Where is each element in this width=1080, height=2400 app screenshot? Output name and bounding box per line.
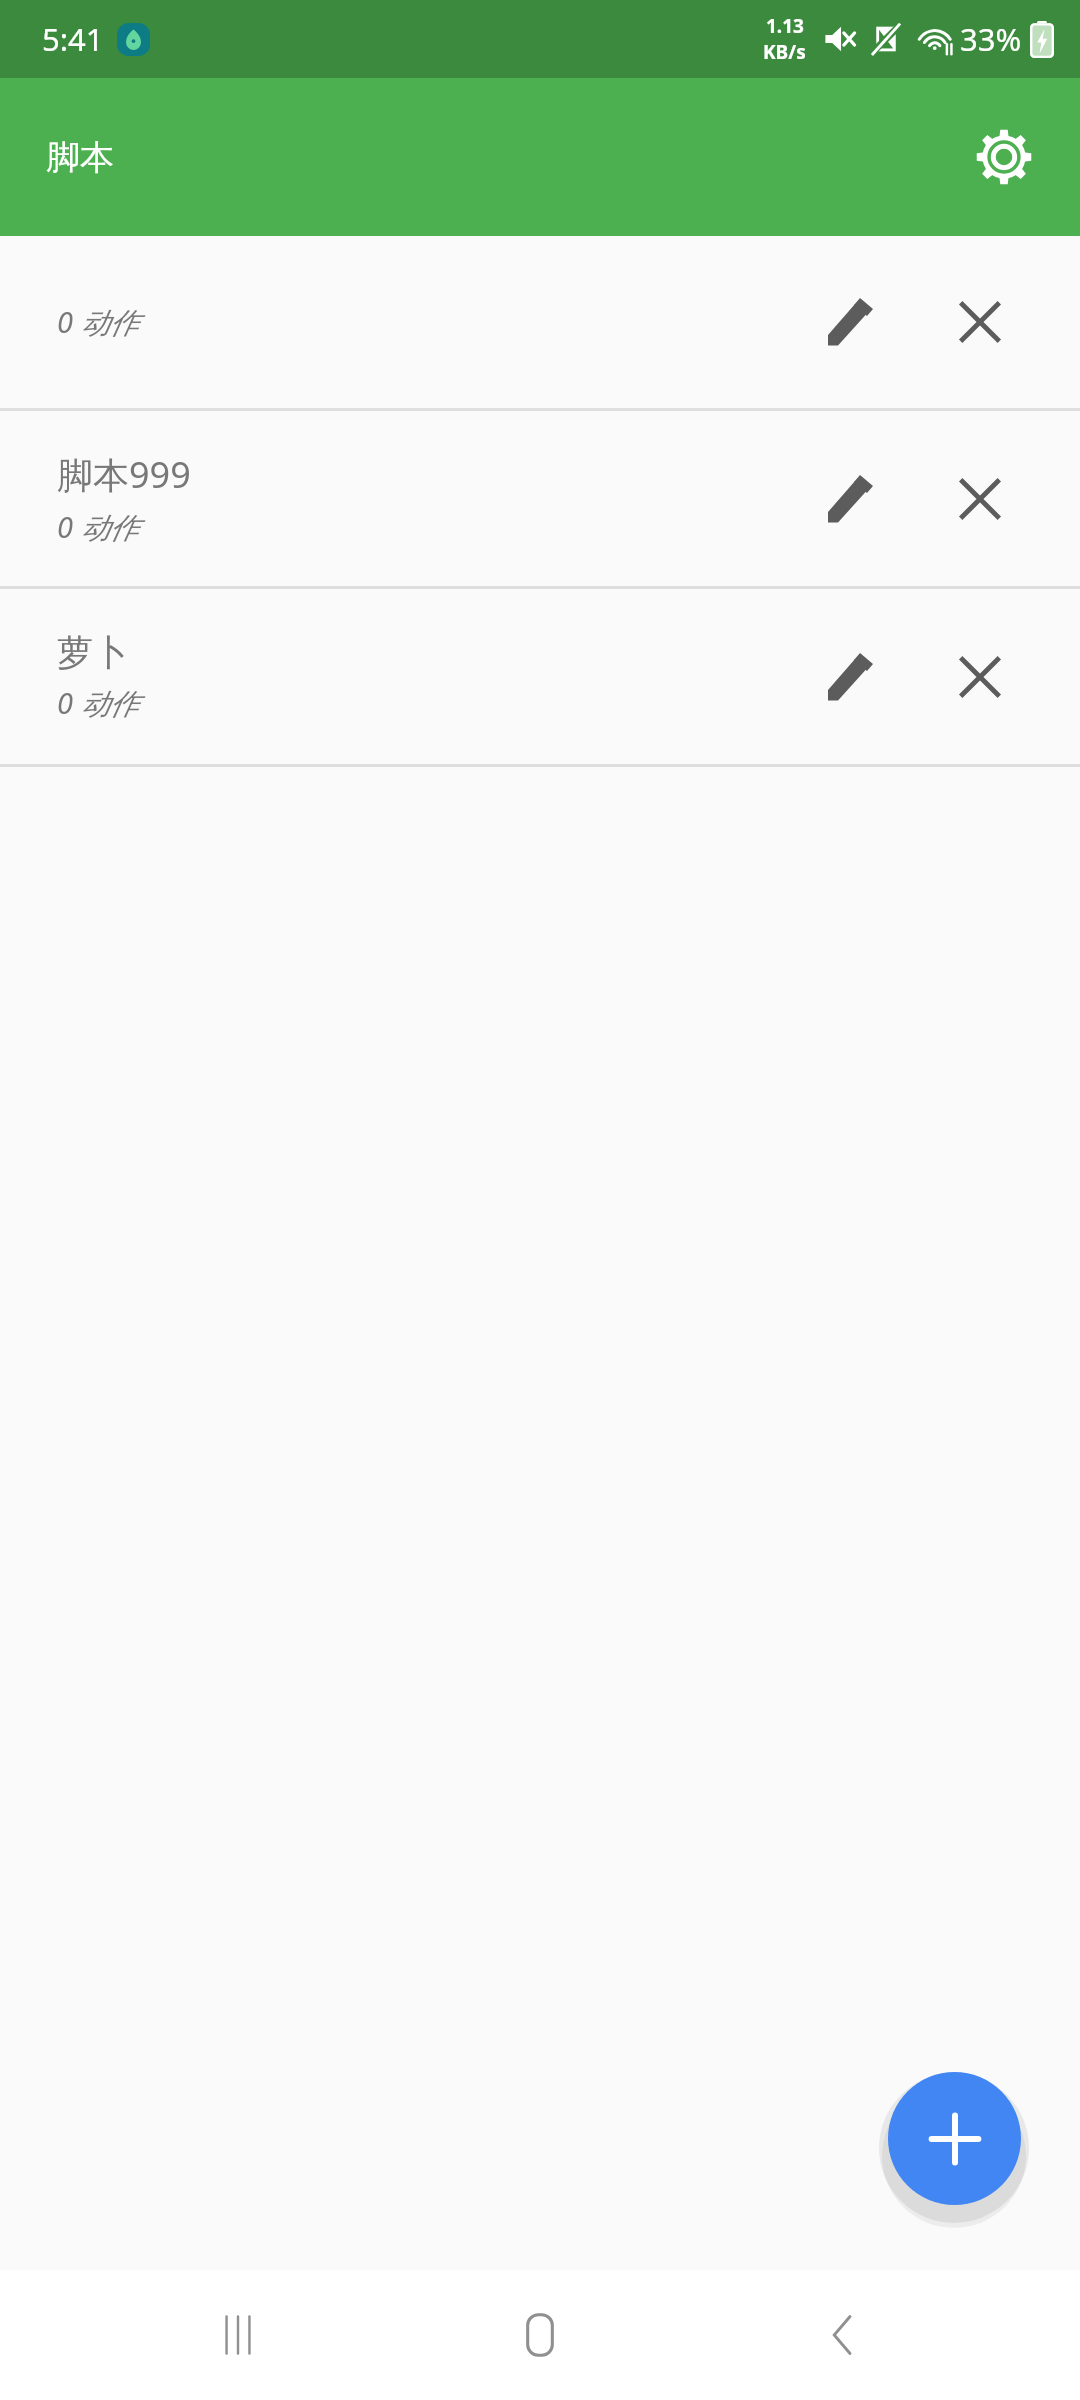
staticText: 0 动作: [57, 302, 139, 342]
button[interactable]: Edit: [795, 622, 905, 732]
staticText: 脚本999: [57, 450, 191, 499]
staticText: 脚本: [46, 136, 114, 179]
button[interactable]: Delete: [925, 444, 1035, 554]
button[interactable]: 萝卜: [0, 589, 1080, 764]
button[interactable]: Delete: [925, 622, 1035, 732]
staticText: 33%: [960, 18, 1022, 60]
button[interactable]: 0 动作: [0, 236, 1080, 408]
staticText: 萝卜: [57, 630, 129, 675]
button[interactable]: Home: [475, 2270, 605, 2400]
button[interactable]: Recents: [173, 2270, 303, 2400]
staticText: KB/s: [763, 39, 806, 65]
staticText: 0 动作: [57, 507, 139, 547]
button[interactable]: Edit: [795, 444, 905, 554]
button[interactable]: 脚本999: [0, 411, 1080, 586]
button[interactable]: Settings: [956, 109, 1052, 205]
button[interactable]: Delete: [925, 267, 1035, 377]
button[interactable]: Edit: [795, 267, 905, 377]
button[interactable]: Back: [778, 2270, 908, 2400]
staticText: 1.13: [766, 13, 804, 39]
staticText: 5:41: [42, 18, 104, 60]
staticText: 0 动作: [57, 683, 139, 723]
button[interactable]: Add: [888, 2072, 1021, 2205]
